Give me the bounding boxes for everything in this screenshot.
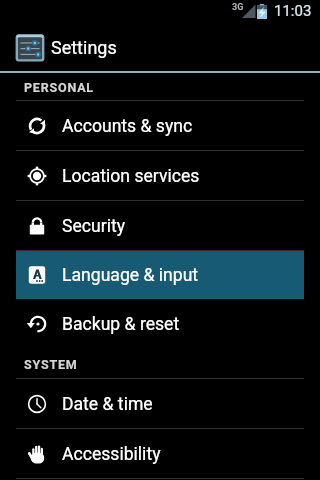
staticText: Backup & reset bbox=[62, 314, 180, 335]
button[interactable]: Settings bbox=[0, 24, 320, 71]
button[interactable]: Location services bbox=[0, 151, 320, 201]
button[interactable]: Language & input bbox=[0, 251, 320, 299]
button[interactable]: Security bbox=[0, 201, 320, 251]
button[interactable]: Date & time bbox=[0, 379, 320, 429]
staticText: Accessibility bbox=[62, 444, 161, 465]
staticText: Settings bbox=[51, 37, 117, 58]
staticText: 11:03 bbox=[274, 2, 312, 20]
button[interactable]: Accounts & sync bbox=[0, 101, 320, 151]
staticText: Date & time bbox=[62, 394, 153, 415]
staticText: Language & input bbox=[62, 265, 199, 286]
staticText: Accounts & sync bbox=[62, 116, 193, 137]
staticText: SYSTEM bbox=[24, 357, 78, 372]
button[interactable]: Accessibility bbox=[0, 429, 320, 479]
button[interactable]: Backup & reset bbox=[0, 299, 320, 349]
staticText: 3G bbox=[232, 2, 244, 13]
staticText: Location services bbox=[62, 166, 200, 187]
staticText: PERSONAL bbox=[24, 80, 94, 95]
staticText: Security bbox=[62, 216, 126, 237]
